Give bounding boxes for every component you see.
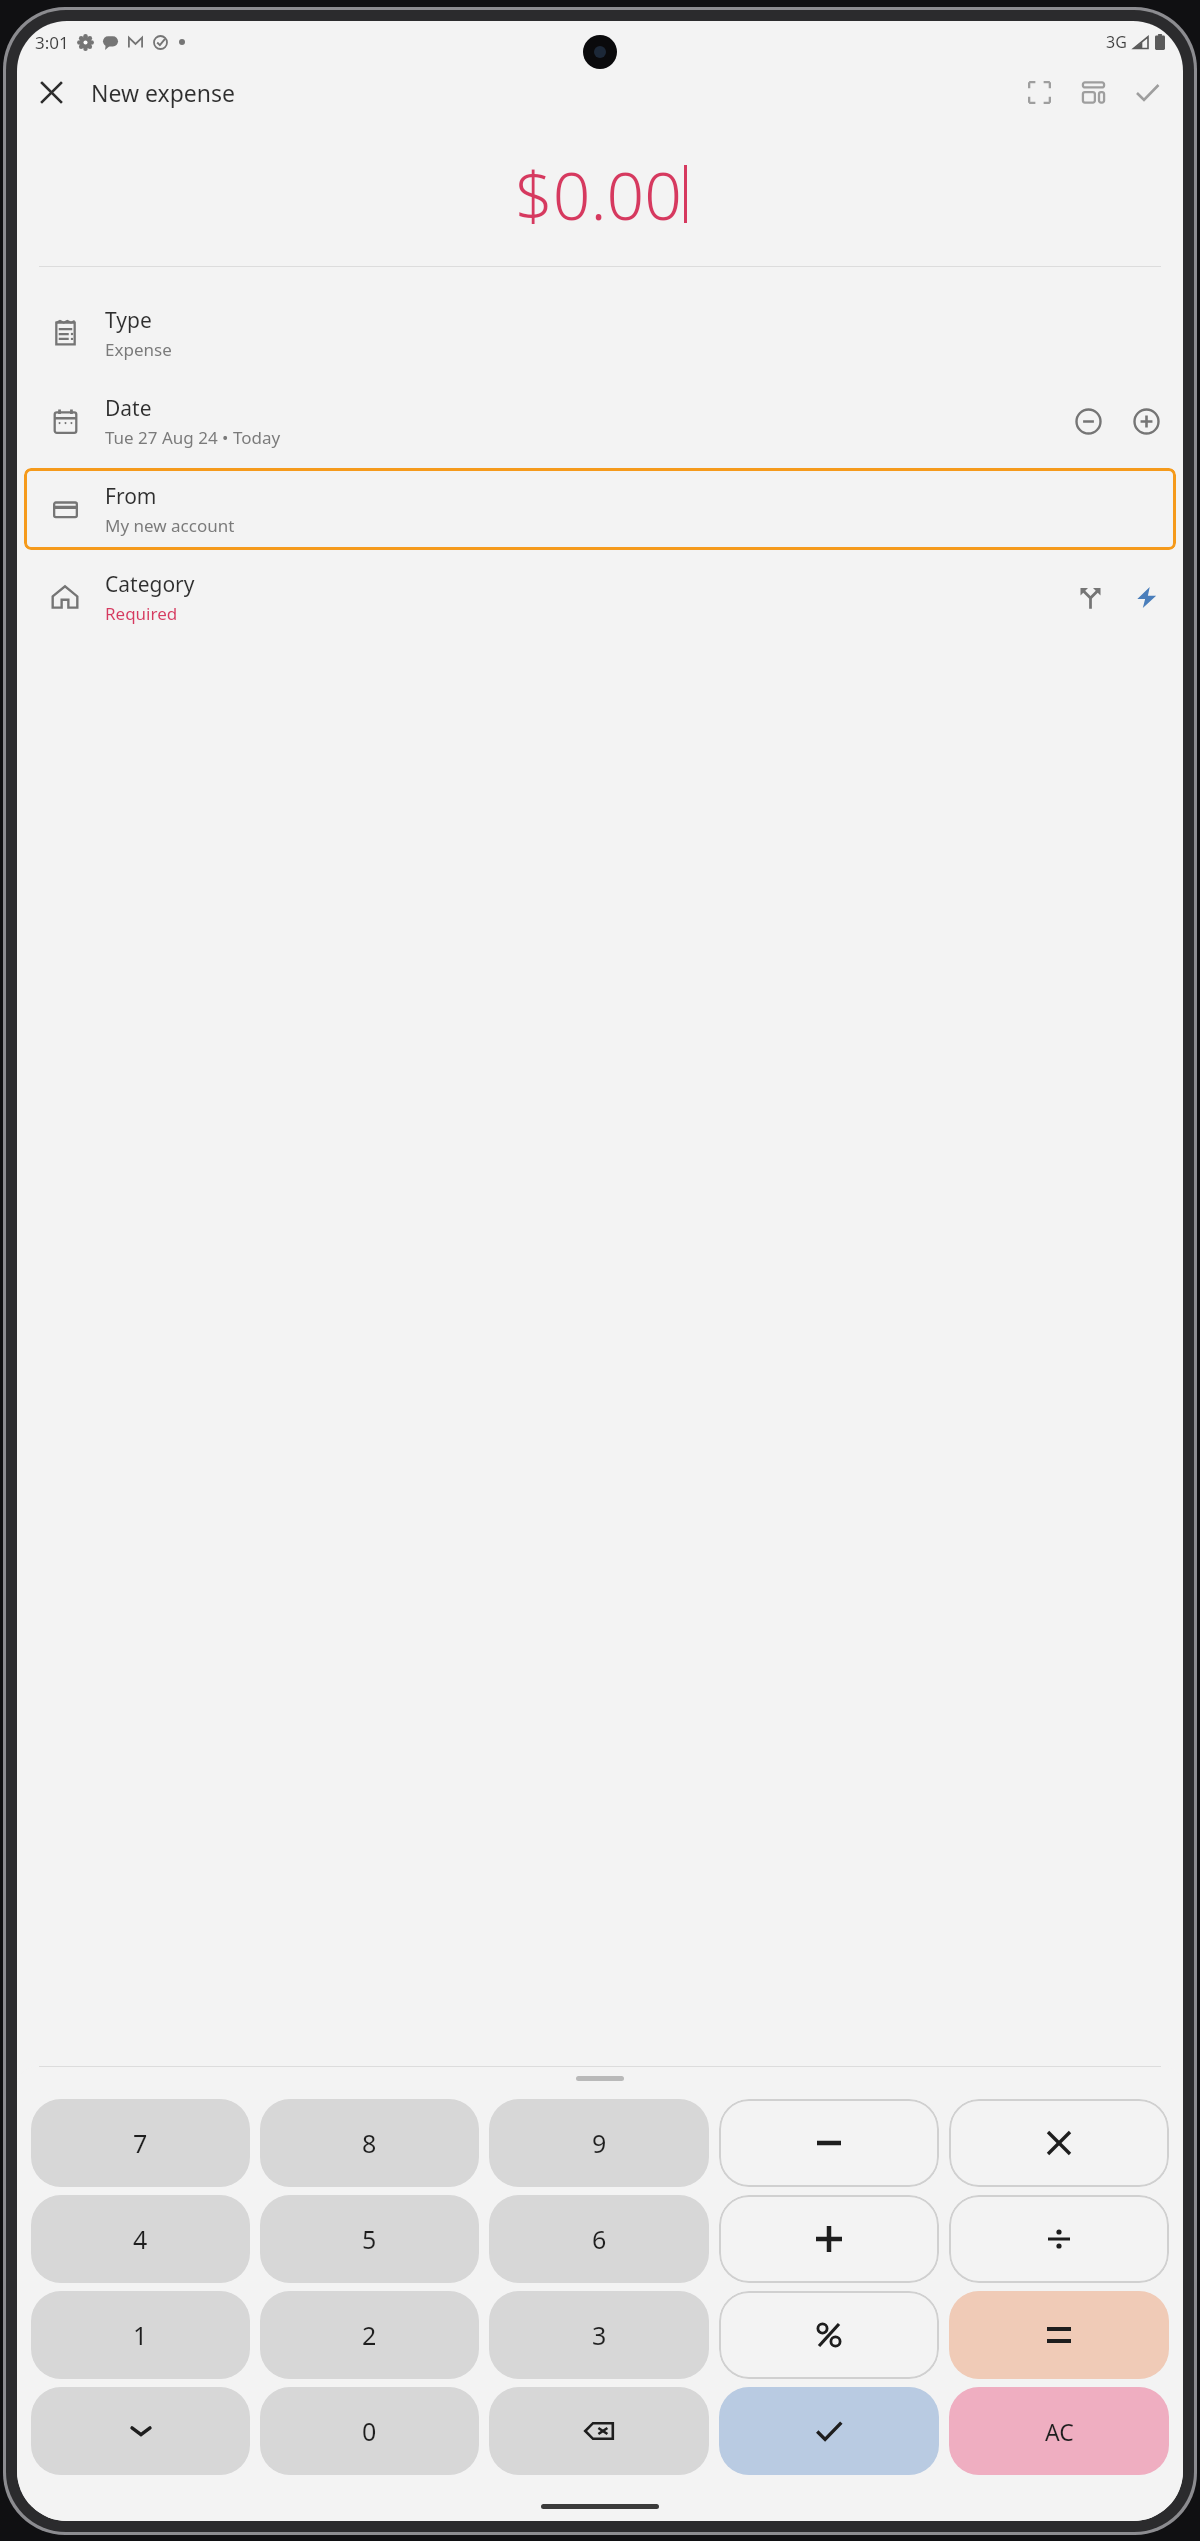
staticText: 2 <box>362 2318 377 2352</box>
staticText: Date <box>105 394 152 423</box>
staticText: From <box>105 482 157 511</box>
button[interactable]: Minus <box>719 2099 939 2187</box>
button[interactable]: Equals <box>949 2291 1169 2379</box>
button[interactable]: 1 <box>31 2291 250 2379</box>
button[interactable]: Divide <box>949 2195 1169 2283</box>
button[interactable]: 3 <box>489 2291 709 2379</box>
staticText: 4 <box>133 2222 148 2256</box>
staticText: Category <box>105 570 195 599</box>
button[interactable]: From <box>24 468 1176 550</box>
button[interactable]: Percent <box>719 2291 939 2379</box>
button[interactable]: Save <box>1123 68 1171 116</box>
staticText: Expense <box>105 338 172 361</box>
staticText: 7 <box>133 2126 148 2160</box>
staticText: Required <box>105 602 178 625</box>
button[interactable]: 2 <box>260 2291 479 2379</box>
staticText: 3:01 <box>35 31 69 54</box>
button[interactable]: 5 <box>260 2195 479 2283</box>
button[interactable]: 8 <box>260 2099 479 2187</box>
button[interactable]: Multiply <box>949 2099 1169 2187</box>
staticText: 0 <box>362 2414 377 2448</box>
button[interactable]: 6 <box>489 2195 709 2283</box>
staticText: 1 <box>133 2318 148 2352</box>
staticText: AC <box>1045 2416 1074 2447</box>
button[interactable]: Next day <box>1123 398 1169 444</box>
button[interactable]: Clear all <box>949 2387 1169 2475</box>
staticText: New expense <box>91 77 236 108</box>
button[interactable]: Confirm <box>719 2387 939 2475</box>
button[interactable]: Backspace <box>489 2387 709 2475</box>
staticText: 8 <box>362 2126 377 2160</box>
button[interactable]: Plus <box>719 2195 939 2283</box>
staticText: 3G <box>1106 31 1127 53</box>
button[interactable]: Previous day <box>1065 398 1111 444</box>
staticText: Type <box>105 306 152 335</box>
button[interactable]: Close <box>27 68 75 116</box>
button[interactable]: Date <box>17 377 1183 465</box>
staticText: 3 <box>592 2318 607 2352</box>
button[interactable]: 7 <box>31 2099 250 2187</box>
staticText: $0.00 <box>515 149 682 239</box>
button[interactable]: Collapse <box>31 2387 250 2475</box>
button[interactable]: 4 <box>31 2195 250 2283</box>
button[interactable]: Auto categorize <box>1123 574 1169 620</box>
staticText: 6 <box>592 2222 607 2256</box>
button[interactable]: Type <box>17 289 1183 377</box>
button[interactable]: 9 <box>489 2099 709 2187</box>
button[interactable]: Scan receipt <box>1015 68 1063 116</box>
staticText: 9 <box>592 2126 607 2160</box>
staticText: 5 <box>362 2222 377 2256</box>
button[interactable]: 0 <box>260 2387 479 2475</box>
button[interactable]: Layout <box>1069 68 1117 116</box>
button[interactable]: Category <box>17 553 1183 641</box>
staticText: Tue 27 Aug 24 • Today <box>105 426 281 449</box>
button[interactable]: Split transaction <box>1067 574 1113 620</box>
staticText: My new account <box>105 514 235 537</box>
